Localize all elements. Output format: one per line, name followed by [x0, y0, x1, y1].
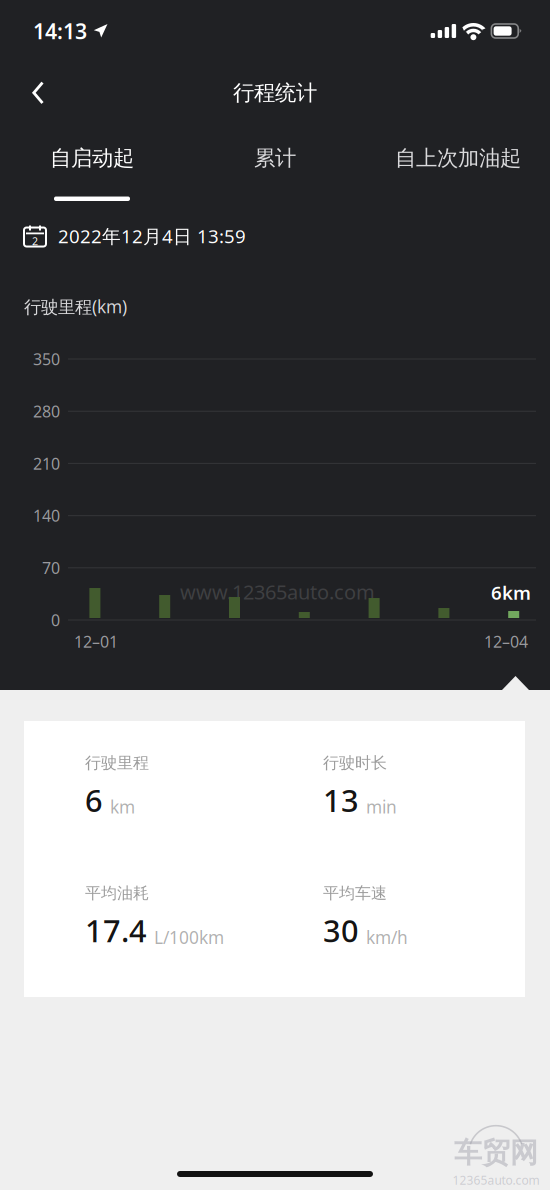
staticText: 140 [33, 505, 60, 526]
staticText: 70 [42, 557, 60, 578]
staticText: 14:13 [33, 17, 87, 45]
staticText: www.12365auto.com [180, 578, 375, 605]
staticText: 280 [33, 401, 60, 422]
staticText: 自启动起 [50, 145, 134, 171]
staticText: km [110, 795, 135, 818]
staticText: 行程统计 [233, 80, 317, 106]
staticText: 行驶里程(km) [24, 295, 127, 318]
staticText: 12365auto.com [452, 1172, 539, 1188]
staticText: 210 [33, 453, 60, 474]
staticText: km/h [366, 926, 408, 949]
staticText: 6 [85, 780, 103, 820]
staticText: 2 [32, 234, 38, 248]
button[interactable]: 累计 [183, 124, 366, 210]
staticText: 2022年12月4日 13:59 [58, 224, 246, 248]
button[interactable]: 自上次加油起 [366, 124, 549, 210]
staticText: 13 [323, 780, 359, 820]
staticText: 30 [323, 910, 359, 951]
staticText: 6km [491, 580, 531, 605]
staticText: 累计 [254, 145, 296, 171]
staticText: 行驶里程 [85, 753, 149, 773]
staticText: 12–01 [74, 631, 118, 652]
staticText: 350 [33, 348, 60, 370]
button[interactable]: 自启动起 [0, 124, 183, 210]
staticText: 17.4 [85, 910, 147, 951]
button[interactable]: Back [12, 68, 64, 118]
staticText: 12–04 [484, 631, 528, 652]
staticText: 平均车速 [323, 883, 387, 903]
staticText: L/100km [154, 926, 224, 949]
staticText: 平均油耗 [85, 883, 149, 903]
staticText: 行驶时长 [323, 753, 387, 773]
staticText: min [366, 795, 397, 818]
staticText: 0 [51, 609, 60, 631]
staticText: 自上次加油起 [395, 145, 521, 171]
staticText: 车贸网 [454, 1136, 538, 1170]
